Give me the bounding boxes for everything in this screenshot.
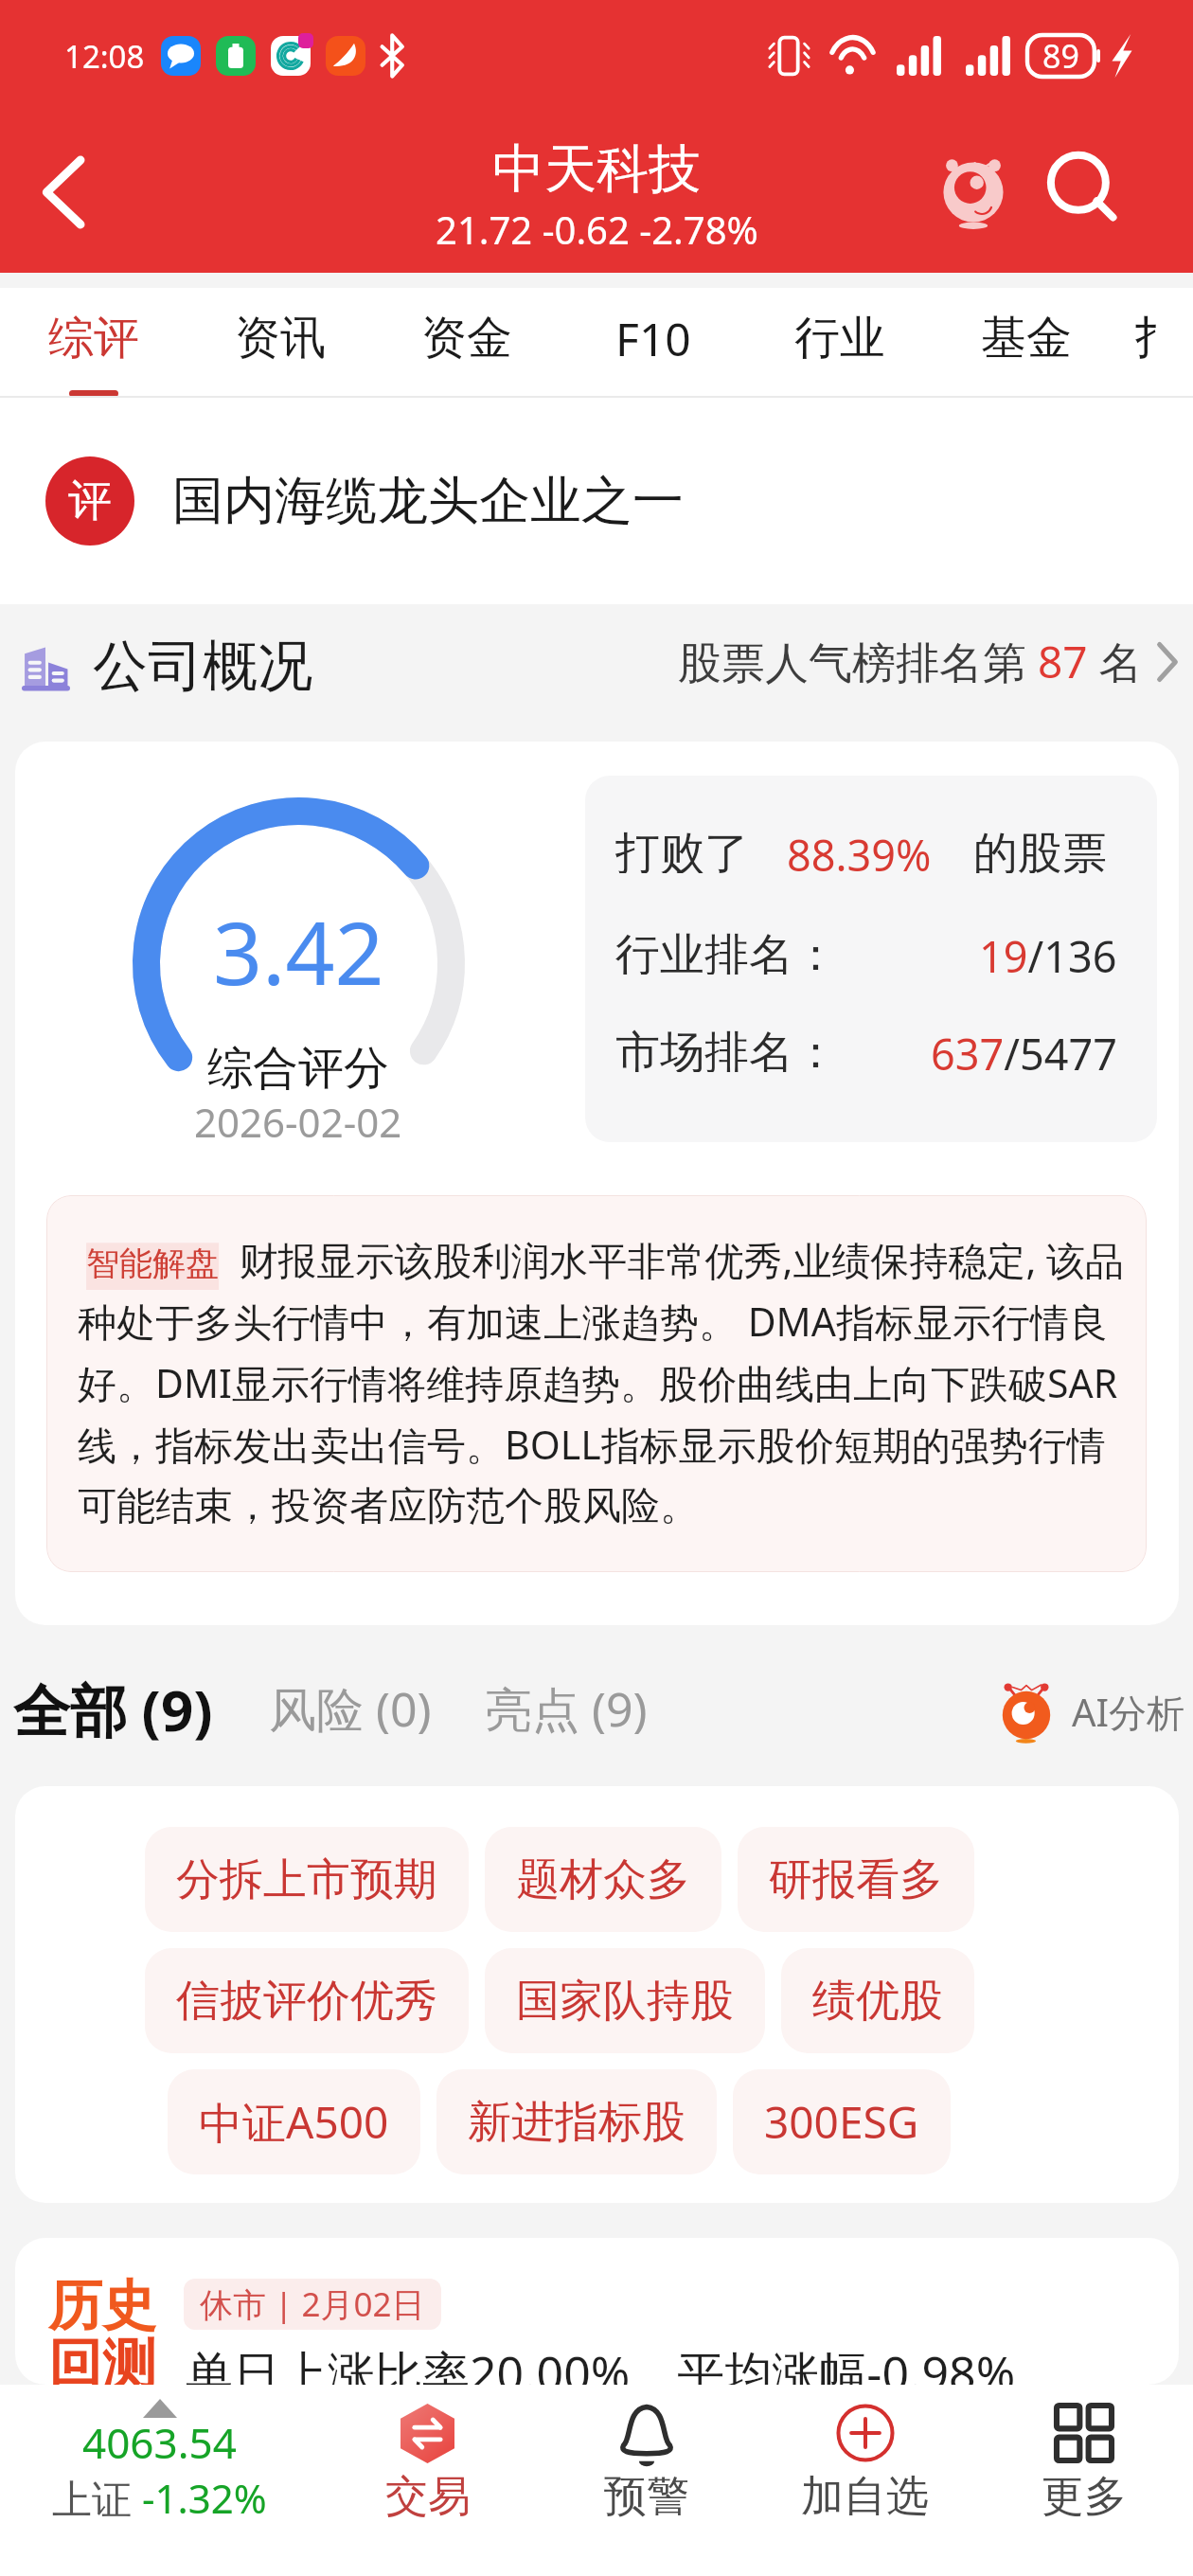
staticText: 扌 [1133,310,1179,367]
button[interactable]: AI assistant [912,112,1035,273]
staticText: 基金 [981,310,1072,367]
staticText: 国家队持股 [516,1974,734,2029]
staticText: 风险 (0) [269,1676,432,1741]
staticText: 市场排名： [615,1025,838,1072]
staticText: 资讯 [235,310,326,367]
button[interactable]: 综评 [0,288,187,398]
button[interactable]: 交易 [318,2385,537,2576]
button[interactable]: 信披评价优秀 [145,1948,469,2053]
button[interactable]: 更多 [974,2385,1193,2576]
button[interactable]: 加自选 [756,2385,974,2576]
staticText: 历史 [48,2272,156,2340]
staticText: 4063.54 [82,2414,237,2471]
staticText: 评 [68,474,112,528]
staticText: 上证 -1.32% [52,2471,267,2525]
button[interactable]: 历史 [15,2238,1179,2385]
staticText: 更多 [1042,2470,1127,2524]
staticText: 公司概况 [93,632,312,701]
staticText: 智能解盘 财报显示该股利润水平非常优秀,业绩保持稳定, 该品种处于多头行情中，有… [78,1233,1135,1530]
button[interactable]: 题材众多 [485,1827,721,1932]
staticText: 股票人气榜排名第 87 名 [678,632,1143,691]
staticText: 2026-02-02 [194,1095,402,1142]
button[interactable]: Search [1031,112,1145,273]
staticText: 的股票 [973,826,1107,873]
button[interactable]: 分拆上市预期 [145,1827,469,1932]
staticText: 88.39% [787,826,932,873]
button[interactable]: 亮点 (9) [485,1676,648,1741]
staticText: 资金 [421,310,512,367]
button[interactable]: 300ESG [733,2069,951,2174]
staticText: 分拆上市预期 [176,1852,437,1907]
staticText: 预警 [604,2470,689,2524]
staticText: 研报看多 [769,1852,943,1907]
staticText: 综评 [48,310,139,367]
staticText: AI分析 [1072,1686,1185,1738]
button[interactable]: Back [0,112,125,273]
staticText: 中天科技 [492,136,701,202]
staticText: 回测 [48,2331,156,2385]
staticText: 加自选 [801,2470,929,2524]
staticText: 亮点 (9) [485,1676,648,1741]
staticText: 交易 [385,2470,471,2524]
staticText: 行业 [794,310,885,367]
staticText: 单日上涨比率20.00%，平均涨幅-0.98% [186,2340,1016,2385]
button[interactable]: 中证A500 [168,2069,420,2174]
staticText: 国内海缆龙头企业之一 [172,469,684,533]
button[interactable]: 股票人气榜排名第 87 名 [678,632,1179,691]
staticText: 信披评价优秀 [176,1974,437,2029]
button[interactable]: AI分析 [1000,1680,1185,1743]
staticText: 新进指标股 [468,2095,686,2150]
staticText: 休市 | 2月02日 [200,2281,425,2327]
staticText: 中证A500 [199,2092,389,2152]
button[interactable]: 全部 (9) [13,1671,213,1748]
staticText: 89 [1042,34,1079,78]
button[interactable]: 4063.54 [0,2385,318,2576]
staticText: 绩优股 [812,1974,943,2029]
button[interactable]: 绩优股 [781,1948,974,2053]
staticText: 全部 (9) [13,1671,213,1748]
staticText: 637/5477 [931,1025,1117,1072]
button[interactable]: F10 [560,288,746,398]
button[interactable]: 基金 [933,288,1119,398]
staticText: 300ESG [764,2092,919,2152]
staticText: 19/136 [979,927,1117,975]
button[interactable]: 扌 [1119,288,1193,398]
button[interactable]: 评 [0,398,1193,604]
staticText: 3.42 [213,893,384,1011]
staticText: 题材众多 [516,1852,690,1907]
button[interactable]: 新进指标股 [436,2069,717,2174]
button[interactable]: 风险 (0) [269,1676,432,1741]
button[interactable]: 国家队持股 [485,1948,765,2053]
button[interactable]: 研报看多 [738,1827,974,1932]
button[interactable]: 行业 [746,288,933,398]
staticText: 综合评分 [207,1040,389,1097]
button[interactable]: 预警 [537,2385,756,2576]
staticText: 行业排名： [615,927,838,975]
staticText: F10 [615,308,691,369]
button[interactable]: 资讯 [187,288,373,398]
staticText: 12:08 [64,35,145,78]
button[interactable]: 资金 [373,288,560,398]
staticText: 21.72 -0.62 -2.78% [436,204,758,255]
staticText: 打败了 [615,826,749,873]
